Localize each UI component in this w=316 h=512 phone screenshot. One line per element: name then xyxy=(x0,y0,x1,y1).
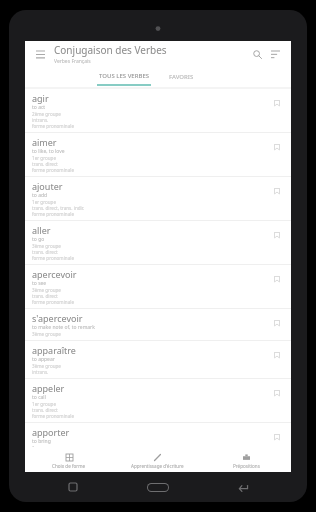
button[interactable]: Filter xyxy=(266,45,284,63)
staticText: Conjugaison des Verbes xyxy=(54,43,167,57)
staticText: Verbes Français xyxy=(54,58,91,65)
button[interactable]: Open navigation menu xyxy=(31,45,49,63)
staticText: to call xyxy=(32,394,46,401)
staticText: apercevoir xyxy=(32,268,77,280)
staticText: trans. direct xyxy=(32,293,58,299)
staticText: to see xyxy=(32,280,47,287)
button[interactable]: apporter xyxy=(25,423,291,450)
button[interactable]: Prépositions xyxy=(202,450,291,472)
button[interactable]: Bookmark agir xyxy=(272,98,282,108)
button[interactable]: s'apercevoir xyxy=(25,309,291,340)
staticText: to act xyxy=(32,104,46,111)
staticText: aimer xyxy=(32,136,57,148)
staticText: TOUS LES VERBES xyxy=(99,72,150,80)
staticText: trans. direct xyxy=(32,407,58,413)
staticText: appeler xyxy=(32,382,65,394)
staticText: to add xyxy=(32,192,48,199)
button[interactable]: apparaître xyxy=(25,341,291,378)
staticText: 1er groupe xyxy=(32,401,56,407)
staticText: 3ème groupe xyxy=(32,243,61,249)
staticText: trans. direct xyxy=(32,161,58,167)
staticText: forme pronominale xyxy=(32,123,75,129)
staticText: to bring xyxy=(32,438,51,445)
staticText: 1er groupe xyxy=(32,199,56,205)
staticText: forme pronominale xyxy=(32,167,75,173)
button[interactable]: Back xyxy=(230,474,256,500)
staticText: 3ème groupe xyxy=(32,287,61,293)
staticText: 2ème groupe xyxy=(32,111,61,117)
button[interactable]: Choix de forme xyxy=(25,450,113,472)
staticText: to appear xyxy=(32,356,55,363)
button[interactable]: ajouter xyxy=(25,177,291,220)
button[interactable]: Bookmark appeler xyxy=(272,388,282,398)
staticText: 1er groupe xyxy=(32,445,56,447)
button[interactable]: Bookmark apporter xyxy=(272,432,282,442)
button[interactable]: Search xyxy=(248,45,266,63)
button[interactable]: Bookmark s'apercevoir xyxy=(272,318,282,328)
button[interactable]: FAVORIS xyxy=(169,67,194,87)
staticText: apporter xyxy=(32,426,70,438)
staticText: trans. direct, trans. indir. xyxy=(32,205,85,211)
button[interactable]: Home xyxy=(143,472,173,502)
button[interactable]: Bookmark ajouter xyxy=(272,186,282,196)
staticText: intrans. xyxy=(32,117,49,123)
staticText: aller xyxy=(32,224,51,236)
staticText: to go xyxy=(32,236,45,243)
staticText: forme pronominale xyxy=(32,255,75,261)
button[interactable]: Bookmark aimer xyxy=(272,142,282,152)
staticText: agir xyxy=(32,92,49,104)
staticText: Apprentissage d'écriture xyxy=(131,463,184,469)
staticText: s'apercevoir xyxy=(32,312,83,324)
button[interactable]: agir xyxy=(25,89,291,132)
button[interactable]: Bookmark apparaître xyxy=(272,350,282,360)
staticText: intrans. xyxy=(32,369,49,375)
button[interactable]: Bookmark aller xyxy=(272,230,282,240)
button[interactable]: aimer xyxy=(25,133,291,176)
button[interactable]: aller xyxy=(25,221,291,264)
button[interactable]: Bookmark apercevoir xyxy=(272,274,282,284)
staticText: forme pronominale xyxy=(32,211,75,217)
staticText: trans. direct xyxy=(32,249,58,255)
staticText: 3ème groupe xyxy=(32,331,61,337)
staticText: FAVORIS xyxy=(169,73,194,81)
staticText: 1er groupe xyxy=(32,155,56,161)
staticText: ajouter xyxy=(32,180,63,192)
button[interactable]: TOUS LES VERBES xyxy=(97,67,151,87)
staticText: Choix de forme xyxy=(52,463,86,469)
button[interactable]: Apprentissage d'écriture xyxy=(113,450,202,472)
staticText: forme pronominale xyxy=(32,413,75,419)
button[interactable]: appeler xyxy=(25,379,291,422)
staticText: to make note of, to remark xyxy=(32,324,95,331)
staticText: 3ème groupe xyxy=(32,363,61,369)
staticText: to like, to love xyxy=(32,148,65,155)
staticText: Prépositions xyxy=(233,463,260,469)
button[interactable]: Recents xyxy=(60,474,86,500)
button[interactable]: apercevoir xyxy=(25,265,291,308)
staticText: forme pronominale xyxy=(32,299,75,305)
staticText: apparaître xyxy=(32,344,76,356)
